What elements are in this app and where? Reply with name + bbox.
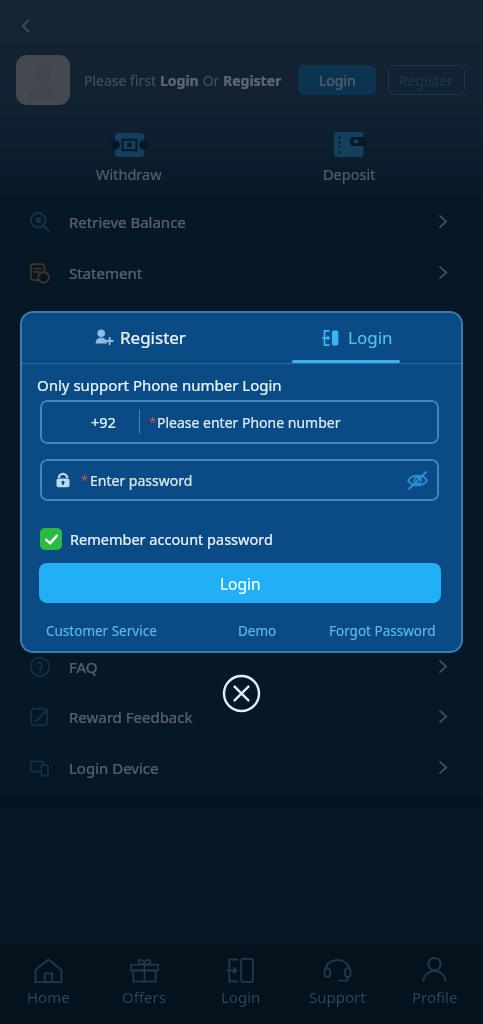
button[interactable]: Home <box>0 944 96 1024</box>
button[interactable]: Statement <box>0 247 483 298</box>
staticText: FAQ <box>69 657 98 677</box>
staticText: Please first <box>84 71 160 90</box>
staticText: Home <box>27 987 70 1007</box>
staticText: Support <box>309 987 366 1007</box>
staticText: Forgot Password <box>329 622 436 640</box>
button[interactable]: +92 <box>40 400 439 444</box>
button[interactable]: Back <box>8 8 44 44</box>
button[interactable]: Login <box>192 944 289 1024</box>
staticText: Enter password <box>90 471 193 490</box>
staticText: Register <box>120 326 186 349</box>
staticText: Withdraw <box>96 164 162 184</box>
button[interactable]: Notice <box>0 451 483 502</box>
staticText: Notice <box>69 467 115 487</box>
staticText: Account Safety <box>69 518 174 538</box>
staticText: Login <box>319 71 356 90</box>
staticText: Retrieve Balance <box>69 212 186 232</box>
button[interactable]: Reward Feedback <box>0 691 483 742</box>
button[interactable]: Demo <box>234 618 281 644</box>
button[interactable]: Register <box>29 311 250 364</box>
staticText: +92 <box>91 412 116 432</box>
button[interactable]: Retrieve Balance <box>0 196 483 247</box>
button[interactable]: * <box>40 459 439 501</box>
staticText: Profile <box>412 987 458 1007</box>
button[interactable]: Login <box>241 311 463 364</box>
staticText: Please enter Phone number <box>157 413 341 432</box>
staticText: * <box>81 471 89 489</box>
button[interactable]: About Us <box>0 604 483 655</box>
button[interactable]: Profile <box>386 944 483 1024</box>
button[interactable]: FAQ <box>0 641 483 692</box>
staticText: Customer Service <box>46 622 157 640</box>
button[interactable]: Invite <box>0 349 483 400</box>
staticText: Login <box>220 573 261 594</box>
button[interactable]: Customer Service <box>42 618 161 644</box>
button[interactable]: Forgot Password <box>325 618 440 644</box>
staticText: Login <box>221 987 261 1007</box>
staticText: Invite <box>69 365 109 385</box>
button[interactable]: Account Safety <box>0 502 483 553</box>
staticText: * <box>149 414 156 431</box>
button[interactable]: Register <box>388 65 465 95</box>
button[interactable]: Login <box>298 65 376 95</box>
button[interactable]: Security Center <box>0 553 483 604</box>
staticText: Register <box>399 71 454 90</box>
button[interactable]: Support <box>289 944 386 1024</box>
staticText: Reward Feedback <box>69 707 193 727</box>
button[interactable]: Activity <box>0 298 483 349</box>
staticText: About Us <box>69 620 134 640</box>
staticText: Only support Phone number Login <box>37 375 282 395</box>
button[interactable]: Deposit <box>309 132 389 184</box>
button[interactable]: Settings <box>0 400 483 451</box>
staticText: Login <box>160 71 199 90</box>
button[interactable]: Close <box>222 674 261 713</box>
staticText: Or <box>199 71 223 90</box>
button[interactable]: Remember account password <box>39 526 274 552</box>
button[interactable]: Offers <box>96 944 192 1024</box>
staticText: Activity <box>69 314 120 334</box>
staticText: Settings <box>69 416 127 436</box>
staticText: Remember account password <box>70 529 273 549</box>
button[interactable] <box>16 55 70 105</box>
button[interactable]: Show password <box>400 463 434 497</box>
staticText: Login Device <box>69 758 159 778</box>
staticText: Demo <box>238 622 277 640</box>
staticText: Deposit <box>323 164 376 184</box>
button[interactable]: Login <box>39 563 441 603</box>
staticText: Register <box>223 71 282 90</box>
staticText: Login <box>348 326 393 349</box>
button[interactable]: Login Device <box>0 742 483 793</box>
staticText: Statement <box>69 263 143 283</box>
button[interactable]: Withdraw <box>89 133 169 184</box>
staticText: Offers <box>122 987 166 1007</box>
